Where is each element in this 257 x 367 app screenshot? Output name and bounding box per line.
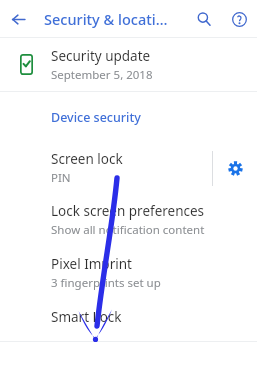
- staticText: Security update: [51, 47, 151, 65]
- staticText: Pixel Imprint: [51, 255, 132, 273]
- button[interactable]: Back: [5, 6, 31, 32]
- staticText: September 5, 2018: [51, 67, 153, 83]
- staticText: Smart Lock: [51, 308, 122, 326]
- staticText: 3 fingerprints set up: [51, 275, 161, 291]
- staticText: Device security: [51, 109, 141, 126]
- staticText: Screen lock: [51, 150, 123, 168]
- button[interactable]: Security update: [0, 38, 257, 91]
- button[interactable]: Security & locati…: [44, 0, 191, 37]
- button[interactable]: Search: [191, 6, 217, 32]
- button[interactable]: Smart Lock: [0, 300, 257, 334]
- button[interactable]: Screen lock: [0, 142, 212, 194]
- staticText: Lock screen preferences: [51, 202, 205, 220]
- staticText: PIN: [51, 170, 71, 186]
- button[interactable]: Pixel Imprint: [0, 246, 257, 300]
- staticText: Show all notification content: [51, 222, 205, 238]
- button[interactable]: Lock screen preferences: [0, 194, 257, 246]
- button[interactable]: Screen lock settings: [213, 142, 257, 194]
- staticText: Security & locati…: [44, 9, 168, 29]
- button[interactable]: Help: [226, 6, 252, 32]
